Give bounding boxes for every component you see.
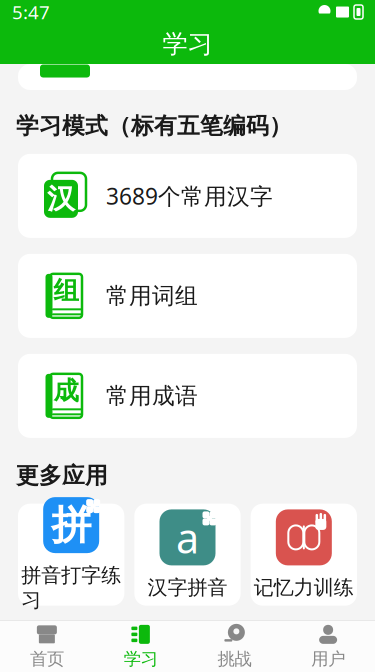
staticText: 3689个常用汉字 <box>106 181 273 211</box>
button[interactable]: 成 <box>18 354 357 438</box>
button[interactable]: 组 <box>18 254 357 338</box>
staticText: 学习模式（标有五笔编码） <box>16 112 292 140</box>
staticText: 记忆力训练 <box>254 575 354 600</box>
staticText: 学习 <box>162 28 212 59</box>
staticText: 5:47 <box>12 0 50 24</box>
button[interactable]: 用户 <box>281 620 375 672</box>
staticText: 汉字拼音 <box>147 575 227 600</box>
staticText: 组 <box>53 275 78 306</box>
staticText: 成 <box>53 375 78 406</box>
staticText: 学习 <box>124 648 158 670</box>
button[interactable]: 汉 <box>18 154 357 238</box>
staticText: 首页 <box>30 648 64 670</box>
staticText: 汉 <box>47 182 75 216</box>
staticText: 常用成语 <box>106 382 198 410</box>
button[interactable]: 首页 <box>0 620 94 672</box>
button[interactable]: 学习 <box>94 620 188 672</box>
staticText: 拼 <box>51 501 91 550</box>
button[interactable]: 记忆力训练 <box>251 504 357 606</box>
button[interactable]: 挑战 <box>187 620 281 672</box>
staticText: a <box>176 510 199 565</box>
button[interactable]: 拼 <box>18 504 124 606</box>
staticText: 挑战 <box>217 648 251 670</box>
staticText: 拼音打字练习 <box>21 563 121 612</box>
staticText: 用户 <box>311 648 345 670</box>
staticText: 更多应用 <box>16 462 108 490</box>
staticText: 常用词组 <box>106 282 198 310</box>
button[interactable]: a <box>134 504 241 606</box>
